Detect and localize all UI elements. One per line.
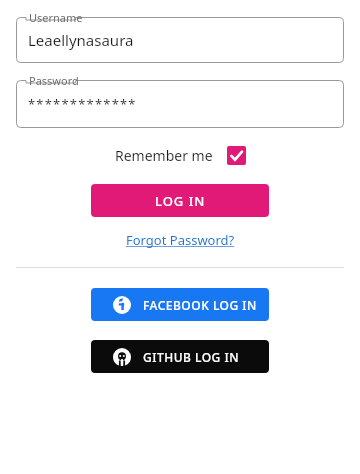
staticText: Username: [29, 10, 83, 25]
staticText: Forgot Password?: [126, 231, 235, 249]
button[interactable]: *************: [16, 71, 344, 128]
staticText: Remember me: [115, 146, 213, 165]
button[interactable]: Remember me: [115, 146, 246, 165]
button[interactable]: Remember me checkbox: [227, 146, 246, 165]
staticText: Password: [29, 73, 79, 88]
staticText: *************: [28, 95, 137, 113]
staticText: LOG IN: [155, 192, 206, 210]
staticText: Leaellynasaura: [28, 30, 134, 50]
button[interactable]: Leaellynasaura: [16, 8, 344, 63]
staticText: FACEBOOK LOG IN: [143, 297, 257, 313]
button[interactable]: GITHUB LOG IN: [91, 340, 269, 373]
staticText: GITHUB LOG IN: [143, 349, 239, 365]
button[interactable]: Forgot Password?: [126, 231, 235, 249]
button[interactable]: LOG IN: [91, 184, 269, 217]
button[interactable]: FACEBOOK LOG IN: [91, 288, 269, 321]
